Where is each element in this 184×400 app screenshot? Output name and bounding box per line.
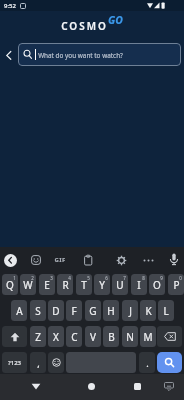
staticText: P [173,278,180,292]
button[interactable] [166,252,181,267]
staticText: 4 [68,275,71,281]
button[interactable] [157,326,182,347]
staticText: S [35,304,41,318]
staticText: I [137,278,141,292]
button[interactable]: K [140,300,156,321]
button[interactable]: F [66,300,82,321]
staticText: R [62,278,69,292]
staticText: COSMO [61,19,108,33]
button[interactable] [0,44,17,66]
staticText: V [90,330,96,344]
button[interactable]: . [139,352,155,373]
staticText: 5 [87,275,90,281]
button[interactable]: Y [94,274,110,295]
staticText: 9 [160,275,163,281]
staticText: What do you want to watch? [38,51,123,60]
staticText: ?123 [8,359,21,367]
button[interactable]: E [39,274,55,295]
staticText: W [23,278,33,292]
button[interactable]: O [149,274,165,295]
button[interactable]: U [112,274,128,295]
button[interactable]: C [66,326,82,347]
button[interactable] [4,254,17,267]
staticText: 7 [123,275,126,281]
button[interactable] [48,352,64,373]
button[interactable]: ?123 [2,352,27,373]
button[interactable]: J [122,300,138,321]
button[interactable] [140,253,157,267]
button[interactable]: Z [30,326,46,347]
staticText: 9:52 [4,2,16,10]
staticText: J [129,304,132,318]
staticText: X [53,330,59,344]
staticText: Q [6,278,14,292]
button[interactable]: P [168,274,184,295]
button[interactable]: R [57,274,73,295]
button[interactable]: M [140,326,156,347]
button[interactable]: N [122,326,138,347]
staticText: E [44,278,50,292]
button[interactable]: What do you want to watch? [18,43,181,66]
button[interactable]: X [48,326,64,347]
staticText: C [71,330,78,344]
staticText: 3 [50,275,53,281]
staticText: O [153,278,161,292]
button[interactable] [127,376,147,396]
staticText: 1 [13,275,16,281]
staticText: 2 [31,275,34,281]
staticText: 8 [142,275,145,281]
button[interactable]: S [30,300,46,321]
button[interactable] [157,352,182,373]
button[interactable]: B [103,326,119,347]
button[interactable] [113,253,129,267]
button[interactable]: H [103,300,119,321]
button[interactable]: Q [2,274,18,295]
button[interactable] [29,253,43,267]
button[interactable]: G [85,300,101,321]
button[interactable] [80,253,96,267]
staticText: Z [35,330,41,344]
staticText: U [116,278,124,292]
staticText: A [16,304,23,318]
staticText: T [81,278,87,292]
button[interactable] [2,326,27,347]
staticText: L [163,304,169,318]
button[interactable] [160,377,178,395]
staticText: F [71,304,77,318]
staticText: , [37,357,40,369]
staticText: 0 [179,275,182,281]
button[interactable]: A [11,300,27,321]
staticText: B [108,330,115,344]
button[interactable] [81,376,101,396]
button[interactable]: I [131,274,147,295]
button[interactable]: W [20,274,36,295]
staticText: H [107,304,115,318]
staticText: GIF [54,256,66,264]
staticText: Y [99,278,105,292]
button[interactable]: V [85,326,101,347]
button[interactable]: , [30,352,46,373]
staticText: . [146,357,149,369]
staticText: GO [108,13,123,27]
button[interactable] [26,376,46,396]
button[interactable]: L [158,300,174,321]
staticText: 6 [105,275,108,281]
staticText: G [89,304,97,318]
button[interactable]: T [76,274,92,295]
staticText: K [145,304,152,318]
button[interactable]: D [48,300,64,321]
staticText: M [143,330,153,344]
button[interactable]: GIF [50,253,70,267]
staticText: N [126,330,134,344]
staticText: D [52,304,60,318]
